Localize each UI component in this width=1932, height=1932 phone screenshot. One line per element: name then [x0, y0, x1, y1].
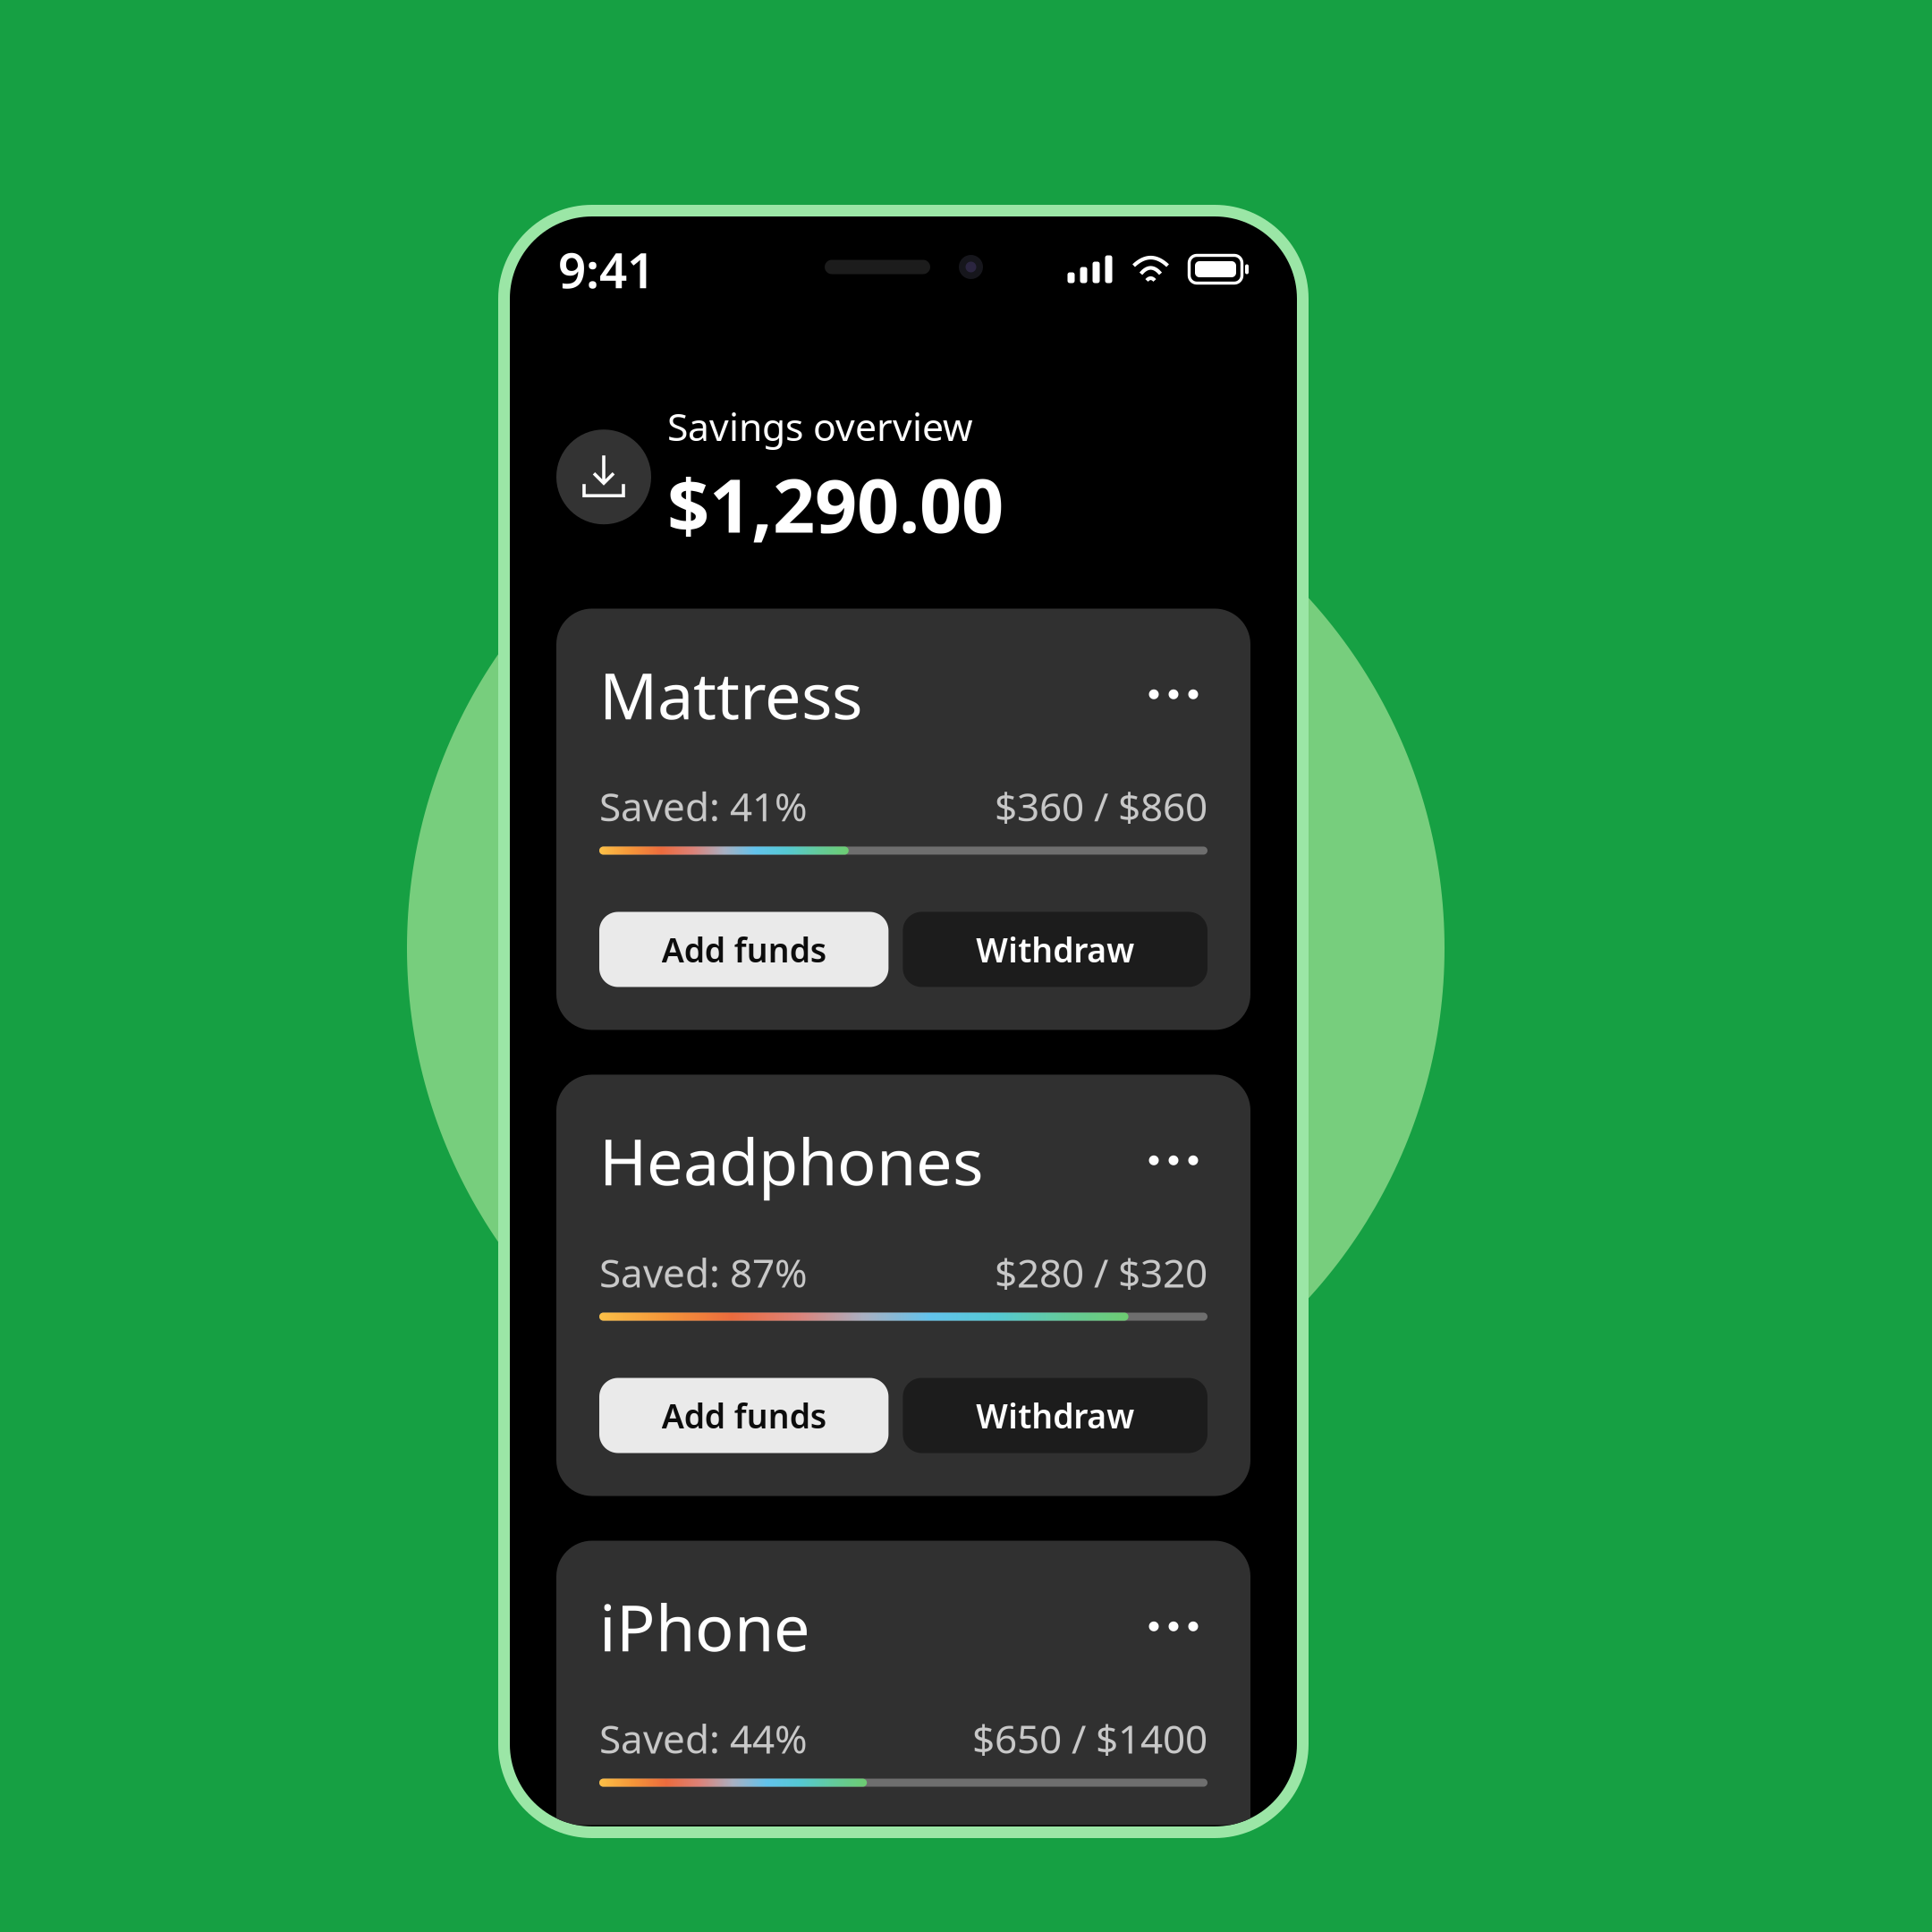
button[interactable]: Add funds: [599, 912, 889, 987]
staticText: $280 / $320: [995, 1246, 1207, 1298]
button[interactable]: Withdraw: [903, 1378, 1207, 1453]
button[interactable]: Withdraw: [903, 912, 1207, 987]
staticText: Mattress: [599, 652, 862, 737]
staticText: Withdraw: [976, 1393, 1134, 1438]
staticText: $360 / $860: [995, 780, 1207, 832]
staticText: $650 / $1400: [972, 1712, 1207, 1764]
staticText: Saved: 41%: [599, 780, 808, 832]
button[interactable]: More options for Mattress: [1140, 668, 1207, 720]
staticText: Add funds: [662, 927, 826, 972]
staticText: iPhone: [599, 1584, 810, 1669]
button[interactable]: Add funds: [599, 1378, 889, 1453]
staticText: $1,290.00: [667, 455, 1004, 553]
staticText: Saved: 44%: [599, 1712, 808, 1764]
button[interactable]: Download statement: [556, 430, 651, 524]
staticText: Saved: 87%: [599, 1246, 808, 1298]
button[interactable]: More options for iPhone: [1140, 1600, 1207, 1652]
staticText: Withdraw: [976, 927, 1134, 972]
staticText: Headphones: [599, 1118, 983, 1203]
staticText: 9:41: [558, 237, 655, 302]
button[interactable]: More options for Headphones: [1140, 1134, 1207, 1186]
staticText: Add funds: [662, 1393, 826, 1438]
staticText: Savings overview: [667, 401, 973, 451]
